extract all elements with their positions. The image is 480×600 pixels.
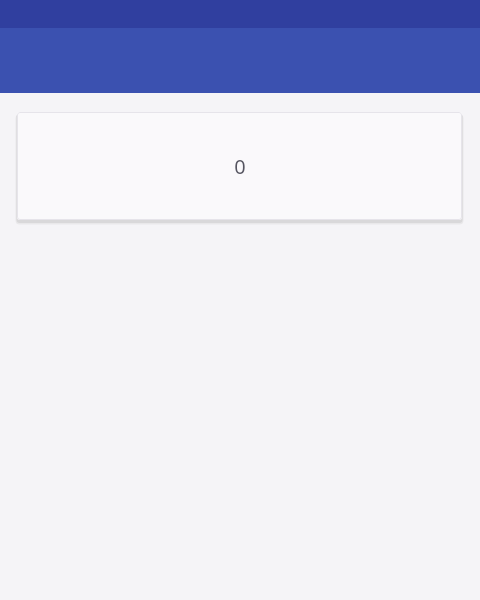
- button[interactable]: 0: [17, 112, 462, 220]
- staticText: 0: [234, 153, 246, 180]
